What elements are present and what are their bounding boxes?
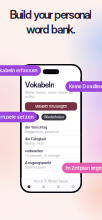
button[interactable]: Listen bbox=[36, 185, 51, 188]
staticText: Noch 12 Wörter heute bbox=[34, 179, 68, 183]
button[interactable]: Profil bbox=[66, 185, 80, 188]
button[interactable]: Lernziele setzen bbox=[0, 112, 37, 122]
button[interactable]: Heute bbox=[22, 185, 36, 188]
staticText: Suggestion, proposal bbox=[25, 130, 59, 134]
staticText: Wörter lernen, wann immer du willst. bbox=[25, 90, 73, 99]
button[interactable]: Vokabel hinzufügen bbox=[25, 102, 77, 110]
staticText: Lernziele setzen bbox=[0, 114, 34, 120]
button[interactable]: die Fähigkeit bbox=[22, 135, 80, 147]
staticText: Vokabeln bbox=[25, 80, 54, 89]
staticText: Vokabeln erfassen bbox=[0, 67, 38, 73]
button[interactable]: Ausgangspunkt bbox=[22, 159, 80, 171]
button[interactable]: der Vorschlag bbox=[22, 124, 80, 135]
staticText: word bank. bbox=[26, 23, 76, 36]
staticText: Ability, skill bbox=[25, 142, 44, 146]
staticText: der Vorschlag bbox=[25, 125, 47, 129]
staticText: Starting point bbox=[25, 165, 46, 169]
staticText: Vokabel hinzufügen bbox=[35, 104, 67, 109]
staticText: Im Zeitplan liegen bbox=[65, 165, 102, 171]
staticText: Ausgangspunkt bbox=[25, 160, 51, 165]
staticText: Build your personal bbox=[10, 8, 92, 22]
button[interactable]: Im Zeitplan liegen bbox=[62, 163, 102, 173]
button[interactable]: Vokabeln erfassen bbox=[0, 65, 41, 76]
staticText: Wiederholen bbox=[44, 115, 64, 119]
staticText: die Fähigkeit bbox=[25, 137, 46, 141]
staticText: vorbereiten bbox=[25, 149, 43, 153]
staticText: Keine Deadline bbox=[69, 83, 102, 89]
staticText: Heute bbox=[27, 115, 36, 119]
button[interactable]: Keine Deadline bbox=[65, 81, 102, 92]
button[interactable]: Heute bbox=[25, 114, 39, 120]
button[interactable]: vorbereiten bbox=[22, 147, 80, 159]
button[interactable]: Wiederholen bbox=[41, 114, 66, 120]
staticText: To prepare, to arrange bbox=[25, 153, 60, 157]
button[interactable]: Üben bbox=[51, 185, 66, 188]
